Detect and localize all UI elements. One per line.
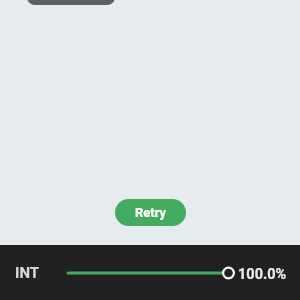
staticText: INT: [15, 264, 40, 282]
button[interactable]: Expand panel: [27, 0, 115, 5]
button[interactable]: Intensity slider, 100 percent: [60, 259, 240, 287]
staticText: Retry: [135, 205, 167, 220]
button[interactable]: INT: [9, 260, 45, 286]
button[interactable]: Retry: [115, 199, 186, 226]
staticText: 100.0%: [238, 266, 287, 283]
